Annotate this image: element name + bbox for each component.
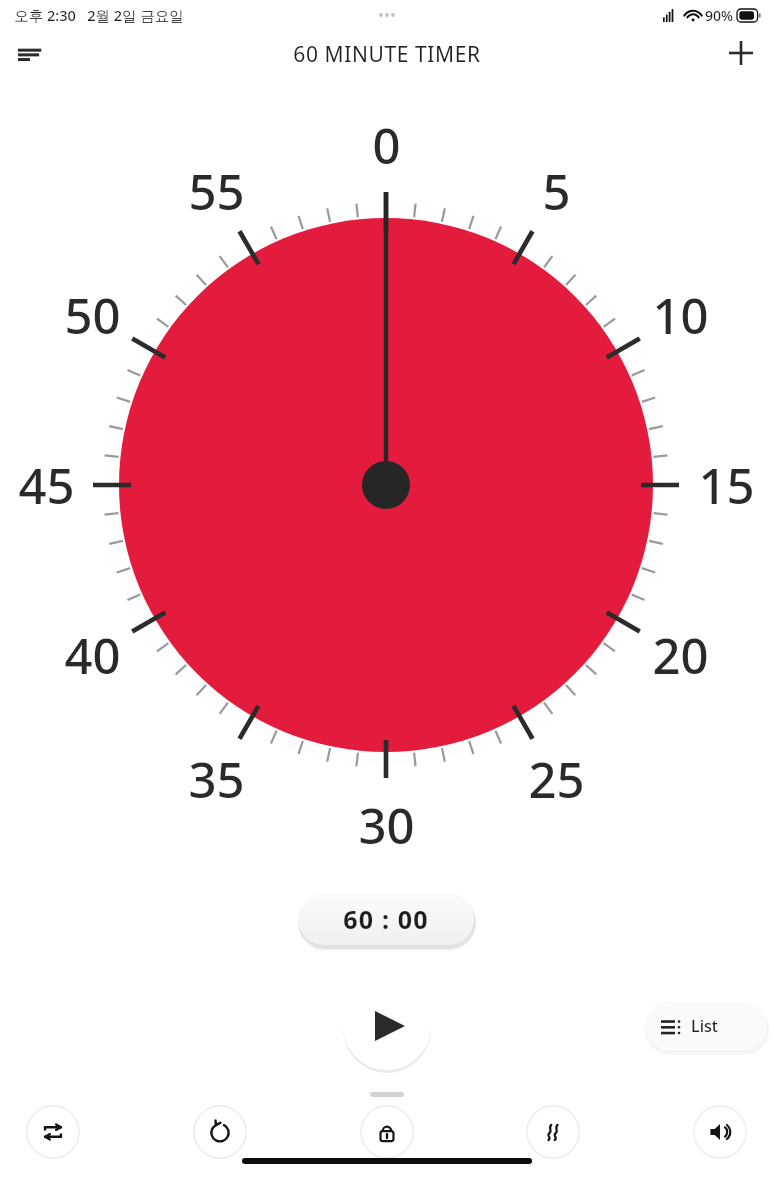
- button[interactable]: Timer dial, 60 minutes: [0, 0, 773, 880]
- staticText: 20: [652, 622, 709, 689]
- button[interactable]: Reset: [193, 1105, 247, 1159]
- staticText: List: [691, 1015, 718, 1037]
- button[interactable]: Vibrate: [526, 1105, 580, 1159]
- staticText: 45: [18, 452, 75, 519]
- staticText: 55: [188, 158, 245, 225]
- staticText: 25: [528, 746, 585, 813]
- staticText: 90%: [705, 6, 733, 25]
- button[interactable]: Repeat: [26, 1105, 80, 1159]
- staticText: 50: [64, 282, 121, 349]
- button[interactable]: Menu: [6, 29, 54, 77]
- staticText: 오후 2:30 2월 2일 금요일: [14, 5, 184, 25]
- staticText: 60 MINUTE TIMER: [293, 40, 481, 69]
- button[interactable]: Lock: [360, 1105, 414, 1159]
- button[interactable]: 60 : 00: [298, 893, 474, 945]
- staticText: 60 : 00: [343, 902, 429, 936]
- button[interactable]: Sound: [693, 1105, 747, 1159]
- staticText: 40: [64, 622, 121, 689]
- staticText: 0: [372, 112, 401, 179]
- button[interactable]: List: [645, 1002, 767, 1050]
- staticText: 5: [542, 158, 571, 225]
- button[interactable]: Add timer: [717, 29, 765, 77]
- staticText: 15: [698, 452, 755, 519]
- staticText: 30: [358, 792, 415, 859]
- button[interactable]: Start timer: [343, 982, 431, 1070]
- staticText: 35: [188, 746, 245, 813]
- staticText: 10: [652, 282, 709, 349]
